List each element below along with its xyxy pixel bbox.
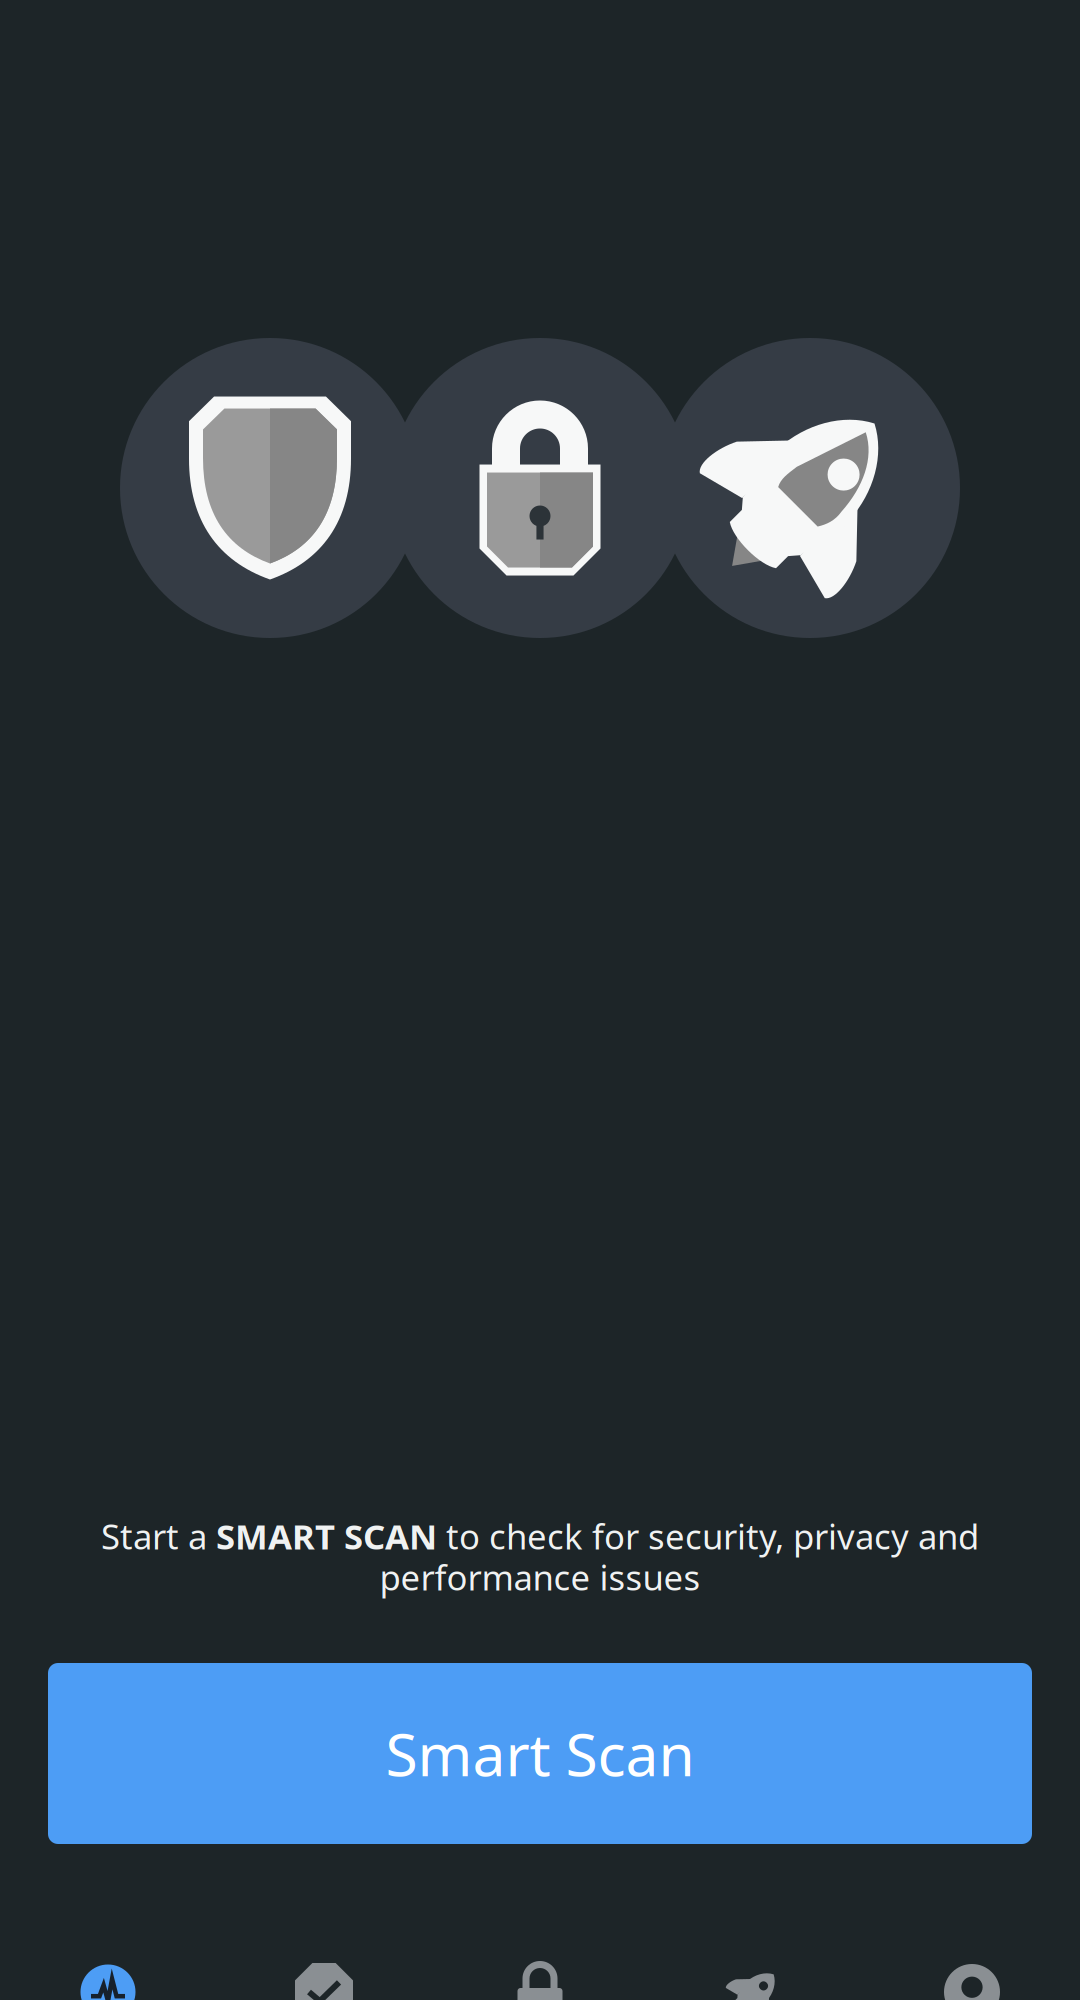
staticText: Smart Scan: [385, 1714, 694, 1792]
staticText: Start a SMART SCAN to check for security…: [101, 1513, 979, 1559]
button[interactable]: Smart Scan: [48, 1663, 1032, 1844]
button[interactable]: Status: [0, 1947, 216, 2000]
button[interactable]: Privacy: [432, 1947, 648, 2000]
staticText: performance issues: [379, 1554, 700, 1600]
button[interactable]: Account: [864, 1947, 1080, 2000]
button[interactable]: Performance: [648, 1947, 864, 2000]
button[interactable]: Protection: [216, 1947, 432, 2000]
